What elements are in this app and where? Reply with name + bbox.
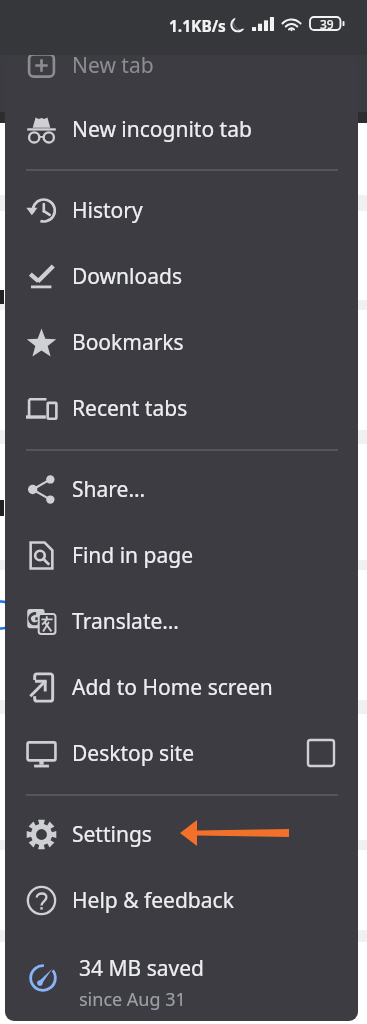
staticText: Find in page xyxy=(72,541,193,570)
button[interactable]: Translate… xyxy=(5,588,358,654)
staticText: since Aug 31 xyxy=(79,987,186,1012)
button[interactable]: History xyxy=(5,177,358,243)
staticText: Add to Home screen xyxy=(72,673,273,702)
staticText: 1.1KB/s xyxy=(169,15,226,36)
button[interactable]: Add to Home screen xyxy=(5,654,358,720)
staticText: Help & feedback xyxy=(72,886,234,915)
staticText: Desktop site xyxy=(72,739,195,768)
button[interactable]: Share… xyxy=(5,456,358,522)
button[interactable]: Help & feedback xyxy=(5,867,358,933)
staticText: 34 MB saved xyxy=(79,954,204,983)
staticText: Downloads xyxy=(72,262,182,291)
staticText: Settings xyxy=(72,820,152,849)
button[interactable]: 34 MB saved xyxy=(5,934,358,1000)
staticText: New tab xyxy=(72,55,154,80)
button[interactable]: New incognito tab xyxy=(5,96,358,162)
staticText: History xyxy=(72,196,143,225)
staticText: Translate… xyxy=(72,607,179,636)
staticText: New incognito tab xyxy=(72,115,252,144)
other: Desktop site checkbox xyxy=(308,740,334,766)
button[interactable]: Find in page xyxy=(5,522,358,588)
staticText: Bookmarks xyxy=(72,328,184,357)
button[interactable]: New tab xyxy=(5,55,358,98)
button[interactable]: Recent tabs xyxy=(5,375,358,441)
staticText: Share… xyxy=(72,475,145,504)
staticText: 39 xyxy=(320,16,334,32)
button[interactable]: Bookmarks xyxy=(5,309,358,375)
staticText: Recent tabs xyxy=(72,394,188,423)
button[interactable]: Downloads xyxy=(5,243,358,309)
button[interactable]: Desktop site xyxy=(5,720,358,786)
button[interactable]: Settings xyxy=(5,801,358,867)
